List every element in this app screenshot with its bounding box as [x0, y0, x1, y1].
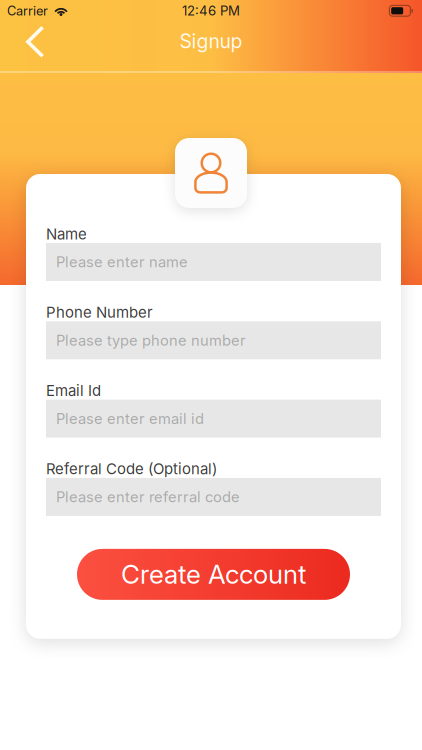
staticText: Name: [46, 225, 87, 243]
staticText: Signup: [179, 30, 242, 53]
button[interactable]: Please enter name: [46, 243, 381, 281]
button[interactable]: Please enter email id: [46, 400, 381, 438]
staticText: Phone Number: [46, 303, 153, 321]
button[interactable]: Please enter referral code: [46, 478, 381, 516]
staticText: Please enter referral code: [56, 488, 240, 506]
staticText: Email Id: [46, 382, 101, 400]
button[interactable]: Please type phone number: [46, 321, 381, 359]
staticText: Please type phone number: [56, 331, 246, 349]
staticText: Referral Code (Optional): [46, 460, 217, 478]
staticText: Please enter name: [56, 253, 188, 271]
staticText: Create Account: [121, 559, 306, 590]
button[interactable]: Back: [9, 17, 62, 67]
staticText: Please enter email id: [56, 410, 204, 427]
button[interactable]: Create Account: [77, 549, 350, 600]
staticText: Carrier: [7, 3, 48, 19]
staticText: 12:46 PM: [182, 3, 240, 19]
